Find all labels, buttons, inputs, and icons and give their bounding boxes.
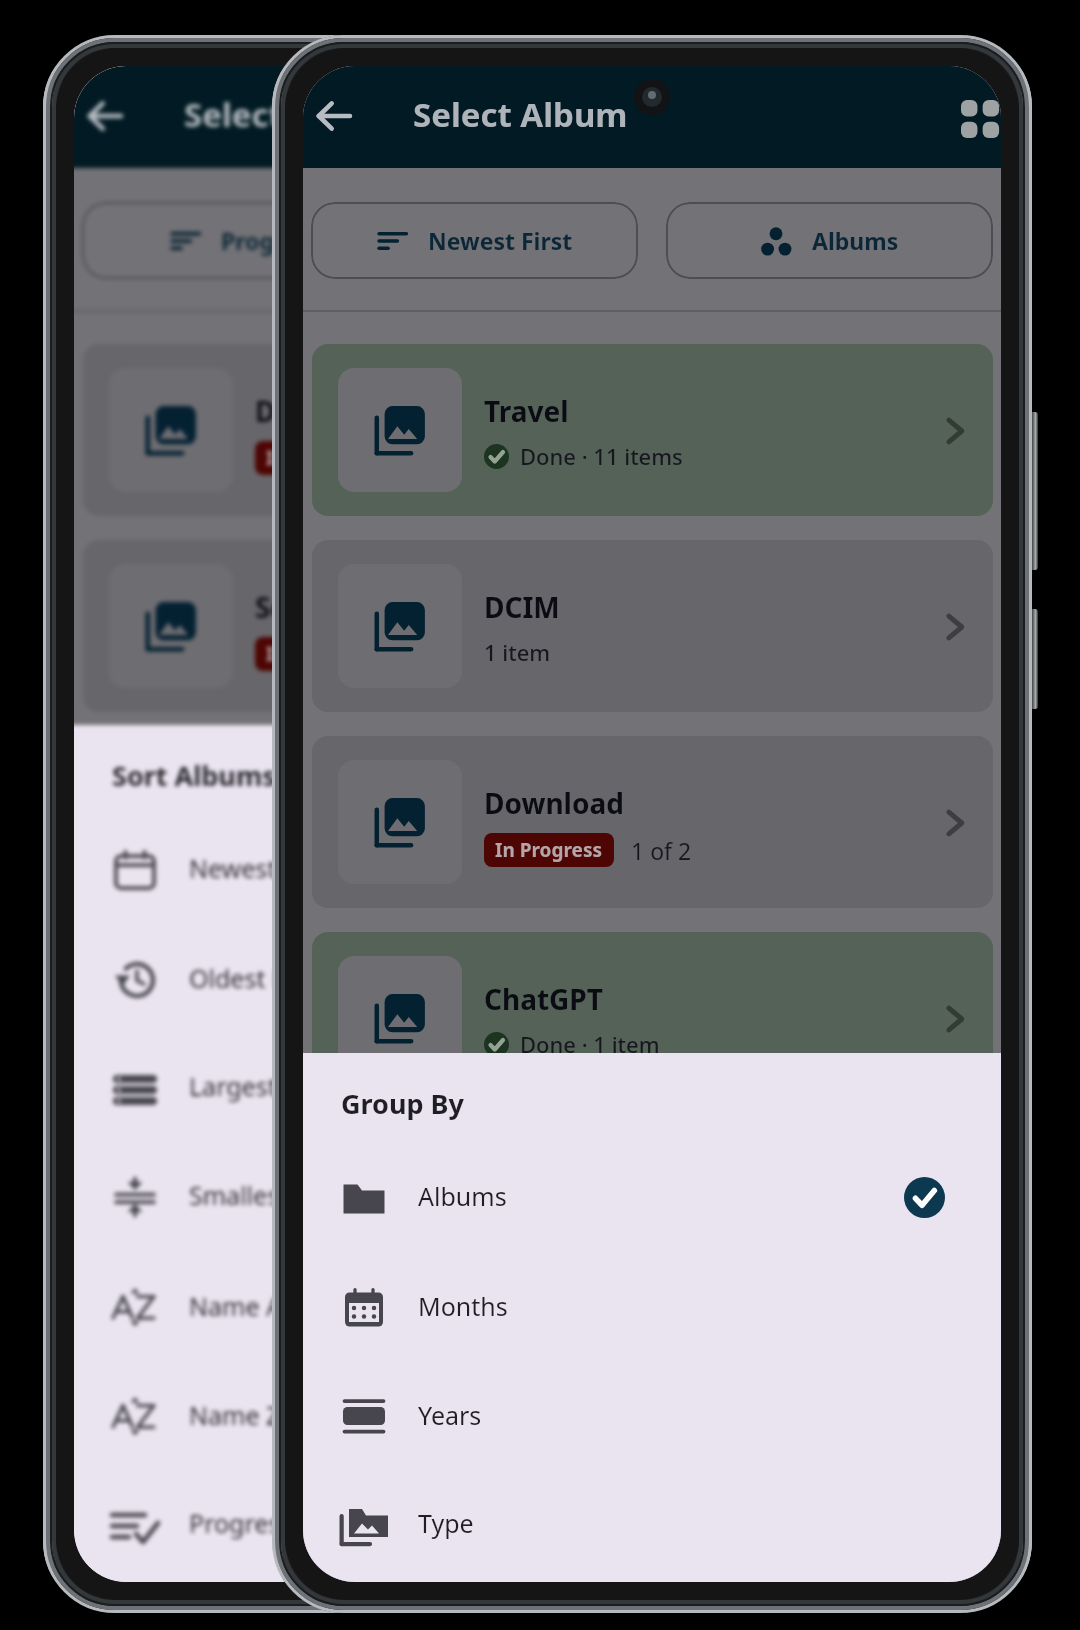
button[interactable]: Newest First	[74, 816, 772, 924]
button[interactable]: Albums	[437, 202, 764, 279]
staticText: Progress	[189, 1506, 293, 1540]
staticText: Select Album	[184, 92, 399, 137]
button[interactable]: Oldest First	[74, 926, 772, 1034]
button[interactable]: Newest First	[311, 202, 638, 279]
staticText: Sort Albums	[112, 757, 276, 794]
button[interactable]: Travel	[312, 344, 993, 516]
staticText: Name Z-A	[189, 1398, 305, 1432]
button[interactable]: Progress	[74, 1471, 772, 1579]
staticText: 1 of 2	[402, 443, 463, 474]
staticText: Done · 11 items	[520, 441, 683, 471]
staticText: Albums	[418, 1179, 507, 1213]
staticText: Years	[418, 1398, 482, 1432]
staticText: Select Album	[413, 92, 628, 137]
staticText: 1 of 2	[402, 639, 463, 670]
staticText: In Progress	[495, 837, 603, 863]
staticText: Progress	[221, 225, 321, 256]
button[interactable]: Back	[86, 97, 124, 135]
button[interactable]: Albums	[303, 1144, 1001, 1252]
button[interactable]: Grid view	[961, 100, 998, 137]
staticText: Travel	[484, 392, 569, 430]
staticText: Albums	[812, 225, 899, 256]
button[interactable]: Type	[303, 1471, 1001, 1579]
button[interactable]: Name Z-A	[74, 1363, 772, 1471]
button[interactable]: Months	[303, 1254, 1001, 1362]
staticText: Newest First	[189, 851, 334, 885]
button[interactable]: DCIM	[83, 344, 764, 516]
button[interactable]: Largest First	[74, 1034, 772, 1142]
button[interactable]: Albums	[666, 202, 993, 279]
staticText: Group By	[341, 1085, 464, 1122]
button[interactable]: Progress	[82, 202, 409, 279]
staticText: Largest First	[189, 1069, 334, 1103]
staticText: Type	[418, 1506, 474, 1540]
button[interactable]: Smallest First	[74, 1143, 772, 1251]
button[interactable]: ChatGPT	[312, 932, 993, 1104]
staticText: Done · 1 item	[520, 1029, 660, 1059]
button[interactable]: Name A-Z	[74, 1254, 772, 1362]
staticText: Smallest First	[189, 1178, 346, 1212]
button[interactable]: Back	[315, 97, 353, 135]
staticText: DCIM	[484, 588, 560, 626]
button[interactable]: Screenshots	[83, 540, 764, 712]
staticText: Download	[484, 784, 624, 822]
staticText: Oldest First	[189, 961, 323, 995]
button[interactable]: Download	[312, 736, 993, 908]
staticText: DCIM	[255, 392, 331, 430]
staticText: In Progress	[266, 445, 374, 471]
staticText: Albums	[583, 225, 670, 256]
staticText: Screenshots	[255, 588, 425, 626]
staticText: Months	[418, 1289, 508, 1323]
staticText: 1 item	[484, 637, 551, 667]
staticText: Name A-Z	[189, 1289, 305, 1323]
button[interactable]: DCIM	[312, 540, 993, 712]
staticText: ChatGPT	[484, 980, 603, 1018]
staticText: In Progress	[266, 641, 374, 667]
staticText: 1 of 2	[631, 835, 692, 866]
staticText: Newest First	[428, 225, 573, 256]
button[interactable]: Years	[303, 1363, 1001, 1471]
